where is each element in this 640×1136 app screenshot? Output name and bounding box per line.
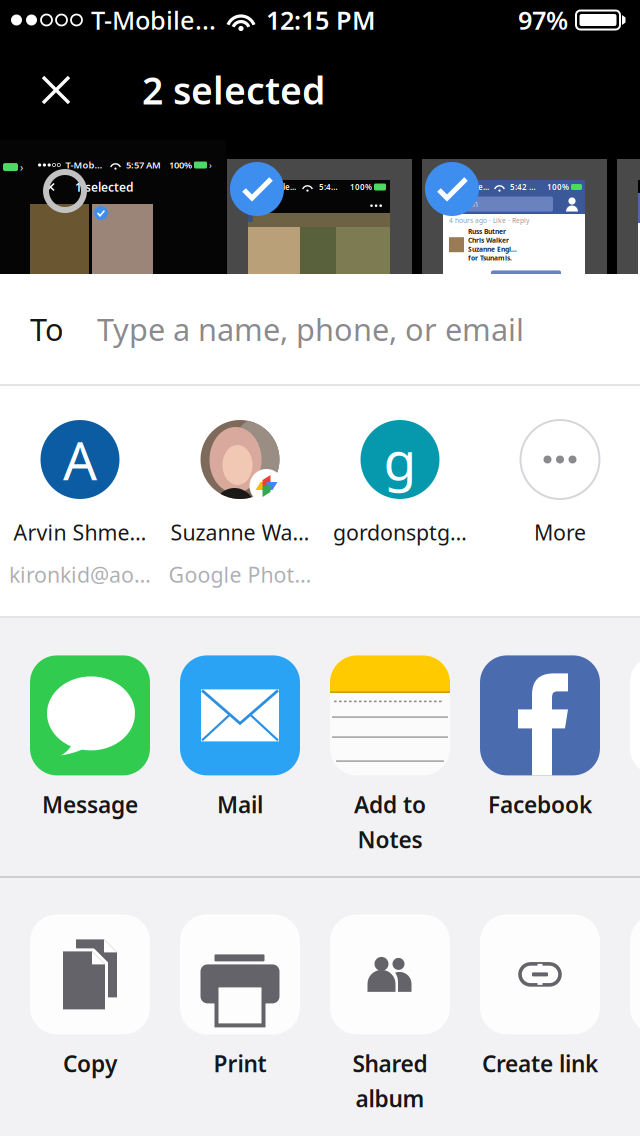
- button[interactable]: A: [0, 420, 160, 616]
- button[interactable]: To: [0, 274, 640, 384]
- staticText: T-Mobile...: [91, 3, 216, 37]
- staticText: 5:57 AM: [126, 159, 161, 171]
- staticText: Type a name, phone, or email: [97, 309, 524, 349]
- staticText: 100%: [350, 182, 372, 192]
- staticText: To: [30, 309, 64, 349]
- staticText: Chris Walker: [468, 236, 509, 245]
- button[interactable]: g: [320, 420, 480, 616]
- staticText: More: [534, 518, 586, 546]
- button[interactable]: Create link: [465, 915, 615, 1121]
- staticText: kironkid@ao…: [9, 560, 151, 589]
- button[interactable]: Close: [17, 51, 95, 129]
- staticText: Facebook: [488, 789, 592, 819]
- staticText: album: [355, 1083, 424, 1114]
- staticText: ›: [209, 159, 212, 171]
- staticText: 97%: [518, 3, 568, 37]
- staticText: Shared: [352, 1048, 427, 1078]
- button[interactable]: More: [480, 420, 640, 616]
- staticText: Google Phot…: [168, 560, 311, 589]
- button[interactable]: Print: [165, 915, 315, 1121]
- button[interactable]: C: [615, 915, 640, 1121]
- button[interactable]: Suzanne Wa…: [160, 420, 320, 616]
- staticText: Create link: [482, 1048, 598, 1078]
- staticText: g: [383, 424, 416, 495]
- button[interactable]: [615, 656, 640, 862]
- staticText: bile...: [469, 182, 489, 192]
- staticText: 5:42 AM: [510, 182, 539, 192]
- staticText: for Tsunamis.: [468, 254, 512, 262]
- staticText: 100%: [547, 182, 569, 192]
- staticText: Print: [213, 1048, 266, 1078]
- staticText: Search: [453, 199, 478, 209]
- staticText: Add to: [354, 789, 426, 819]
- button[interactable]: Add to: [315, 656, 465, 862]
- staticText: Suzanne English Walker trolling: [468, 245, 516, 254]
- staticText: A: [63, 424, 97, 495]
- staticText: T-Mobile...: [65, 159, 103, 171]
- staticText: Suzanne Wa…: [170, 518, 309, 546]
- staticText: 4 hours ago · Like · Reply: [449, 216, 529, 225]
- staticText: 5:49 AM: [319, 182, 342, 192]
- button[interactable]: Copy: [15, 915, 165, 1121]
- staticText: Mail: [217, 789, 263, 819]
- staticText: 100%: [169, 159, 192, 171]
- staticText: 12:15 PM: [266, 3, 376, 37]
- staticText: Arvin Shme…: [13, 518, 146, 546]
- staticText: Russ Butner: [468, 227, 506, 236]
- button[interactable]: Shared: [315, 915, 465, 1121]
- staticText: 1 selected: [75, 179, 134, 195]
- staticText: Copy: [63, 1048, 117, 1078]
- staticText: Message: [42, 789, 138, 819]
- button[interactable]: Mail: [165, 656, 315, 862]
- staticText: ›: [20, 160, 23, 174]
- button[interactable]: Message: [15, 656, 165, 862]
- staticText: bile...: [276, 182, 296, 192]
- staticText: Notes: [357, 824, 422, 855]
- staticText: gordonsptg…: [333, 518, 467, 546]
- button[interactable]: Facebook: [465, 656, 615, 862]
- staticText: 2 selected: [142, 65, 325, 115]
